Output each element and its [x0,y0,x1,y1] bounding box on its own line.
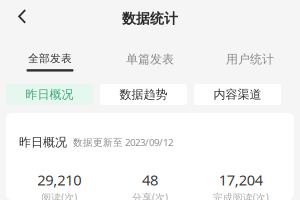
staticText: 内容渠道 [213,87,261,102]
staticText: 阅读(次) [41,191,77,200]
staticText: 昨日概况 [25,87,73,102]
staticText: 数据趋势 [119,87,167,102]
staticText: 数据统计 [122,10,178,27]
button[interactable]: 单篇发表 [100,36,200,72]
staticText: 48 [142,170,158,190]
staticText: 用户统计 [226,52,274,67]
staticText: 完成阅读(次) [213,191,269,200]
staticText: 数据更新至 2023/09/12 [73,136,173,149]
button[interactable]: 昨日概况 [6,84,93,105]
staticText: 29,210 [37,170,81,190]
staticText: 单篇发表 [126,52,174,67]
staticText: 全部发表 [28,52,72,65]
button[interactable]: 数据趋势 [100,84,187,105]
button[interactable]: Back [0,0,44,33]
staticText: 17,204 [219,170,263,190]
staticText: 分享(次) [132,191,168,200]
button[interactable]: 用户统计 [200,36,300,72]
button[interactable]: 内容渠道 [194,84,281,105]
staticText: 昨日概况 [19,135,67,150]
button[interactable]: 全部发表 [0,36,100,72]
